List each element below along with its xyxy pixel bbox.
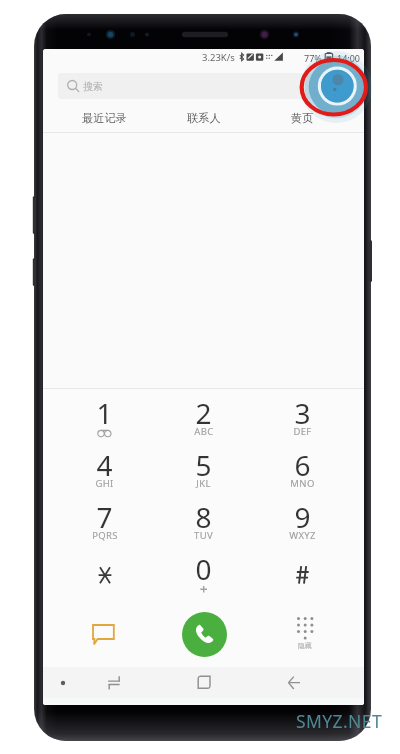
button[interactable]: Pin navigation bar — [52, 667, 74, 698]
button[interactable]: 3 — [253, 389, 352, 441]
staticText: 2 — [195, 394, 212, 432]
staticText: TUV — [194, 529, 213, 542]
staticText: PQRS — [92, 529, 118, 542]
staticText: DEF — [293, 425, 312, 438]
button[interactable]: 7 — [55, 493, 154, 545]
button[interactable]: 搜索 — [58, 73, 350, 99]
staticText: 6 — [294, 446, 311, 484]
staticText: 联系人 — [187, 111, 221, 125]
staticText: 黄页 — [291, 111, 314, 125]
button[interactable]: 0 — [154, 545, 253, 597]
staticText: 9 — [294, 498, 311, 536]
staticText: 77% — [304, 52, 322, 64]
staticText: 8 — [195, 498, 212, 536]
button[interactable]: Call — [154, 606, 254, 662]
staticText: 最近记录 — [82, 111, 127, 125]
staticText: 3.23K/s — [202, 51, 235, 64]
staticText: MNO — [290, 477, 315, 490]
button[interactable]: Switch windows — [95, 667, 133, 698]
button[interactable]: 8 — [154, 493, 253, 545]
button[interactable]: 1 — [55, 389, 154, 441]
staticText: 隐藏 — [298, 641, 312, 650]
button[interactable]: 4 — [55, 441, 154, 493]
staticText: 1 — [96, 394, 113, 432]
button[interactable]: 联系人 — [154, 104, 253, 131]
button[interactable]: 黄页 — [253, 104, 352, 131]
staticText: 4 — [96, 446, 113, 484]
button[interactable]: Hide keypad — [254, 606, 354, 662]
staticText: 搜索 — [83, 80, 103, 93]
button[interactable]: Send message — [53, 606, 154, 662]
button[interactable] — [253, 545, 352, 597]
staticText: 7 — [96, 498, 113, 536]
button[interactable]: 6 — [253, 441, 352, 493]
button[interactable]: 5 — [154, 441, 253, 493]
staticText: JKL — [196, 477, 211, 490]
button[interactable]: Recent apps — [185, 667, 223, 698]
staticText: 5 — [195, 446, 212, 484]
button[interactable] — [55, 545, 154, 597]
staticText: SMYZ.NET — [296, 709, 383, 733]
staticText: 0 — [195, 550, 212, 588]
button[interactable]: 9 — [253, 493, 352, 545]
staticText: 14:00 — [337, 52, 361, 64]
staticText: GHI — [95, 477, 114, 490]
button[interactable]: 2 — [154, 389, 253, 441]
button[interactable]: Back — [275, 667, 313, 698]
button[interactable]: 最近记录 — [55, 104, 154, 131]
staticText: ABC — [194, 425, 214, 438]
staticText: WXYZ — [289, 529, 316, 542]
staticText: 3 — [294, 394, 311, 432]
